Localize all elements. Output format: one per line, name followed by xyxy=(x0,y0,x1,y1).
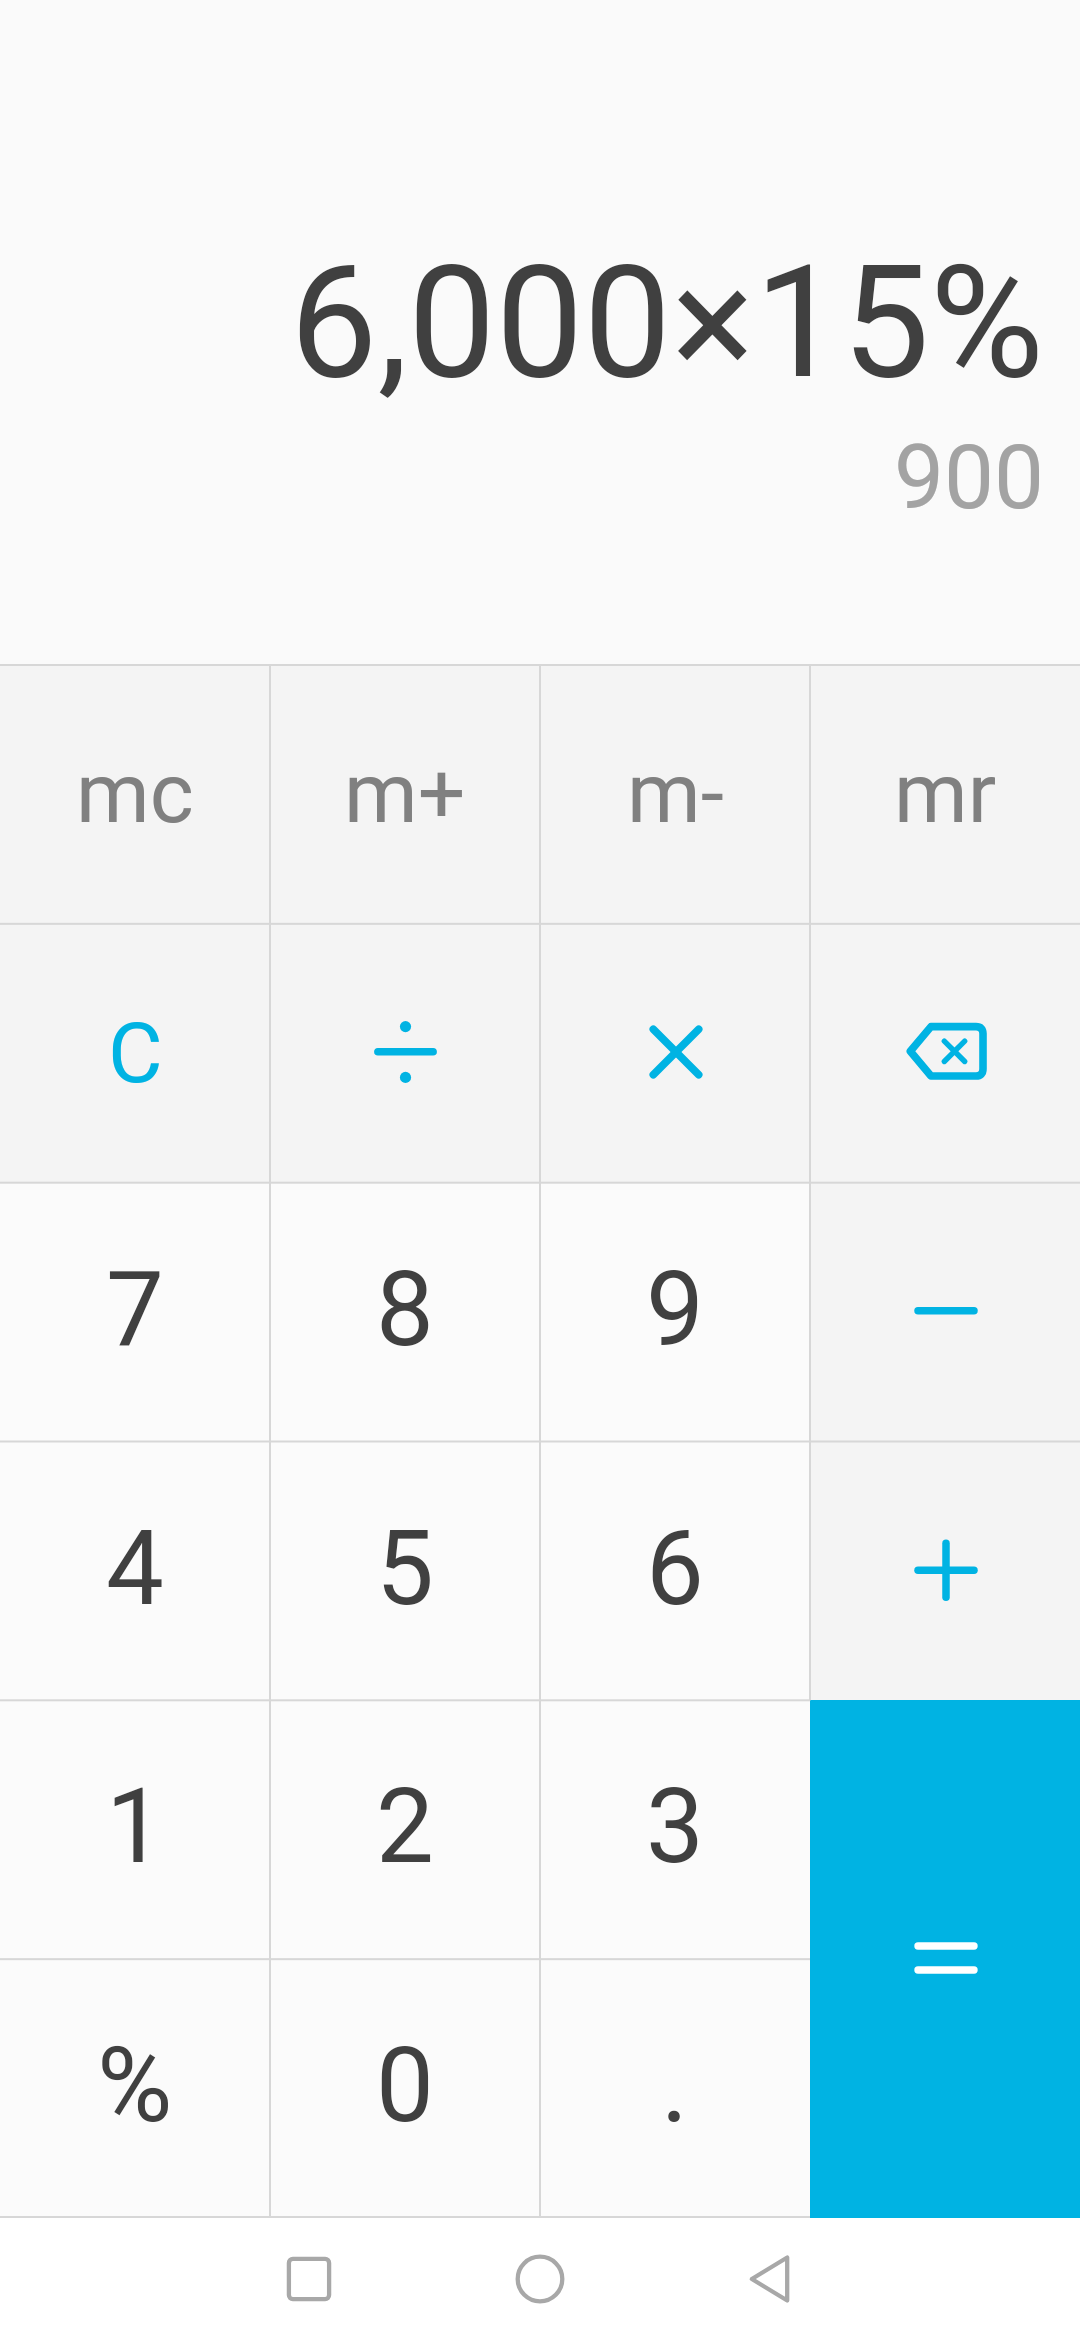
button[interactable]: 6 xyxy=(540,1442,810,1701)
staticText: 8 xyxy=(376,1249,434,1370)
staticText: 6,000×15% xyxy=(289,231,1044,414)
button[interactable]: . xyxy=(540,1959,810,2218)
button[interactable]: 7 xyxy=(0,1183,270,1442)
staticText: 1 xyxy=(106,1766,164,1887)
staticText: . xyxy=(661,2025,689,2146)
staticText: 9 xyxy=(646,1249,704,1370)
button[interactable]: 9 xyxy=(540,1183,810,1442)
staticText: 0 xyxy=(376,2025,434,2146)
button[interactable]: 2 xyxy=(270,1700,540,1959)
button[interactable]: % xyxy=(0,1959,270,2218)
staticText: mr xyxy=(894,744,997,842)
button[interactable]: Recent apps xyxy=(259,2229,359,2329)
staticText: 900 xyxy=(893,425,1044,529)
button[interactable]: Backspace xyxy=(810,924,1080,1183)
button[interactable]: Back xyxy=(719,2229,819,2329)
button[interactable]: Divide xyxy=(270,924,540,1183)
staticText: 5 xyxy=(376,1508,434,1629)
button[interactable]: mr xyxy=(810,665,1080,924)
button[interactable]: m+ xyxy=(270,665,540,924)
button[interactable]: 4 xyxy=(0,1442,270,1701)
staticText: m- xyxy=(627,744,724,842)
button[interactable]: Home xyxy=(490,2229,590,2329)
staticText: 6 xyxy=(646,1508,704,1629)
button[interactable]: 3 xyxy=(540,1700,810,1959)
button[interactable]: Minus xyxy=(810,1183,1080,1442)
staticText: 4 xyxy=(106,1508,164,1629)
button[interactable]: Multiply xyxy=(540,924,810,1183)
button[interactable]: 5 xyxy=(270,1442,540,1701)
staticText: 3 xyxy=(646,1766,704,1887)
button[interactable]: mc xyxy=(0,665,270,924)
button[interactable]: Plus xyxy=(810,1442,1080,1701)
button[interactable]: 1 xyxy=(0,1700,270,1959)
button[interactable]: Equals xyxy=(810,1700,1080,2218)
staticText: mc xyxy=(76,744,194,842)
button[interactable]: 0 xyxy=(270,1959,540,2218)
button[interactable]: 8 xyxy=(270,1183,540,1442)
staticText: m+ xyxy=(344,744,466,842)
button[interactable]: C xyxy=(0,924,270,1183)
button[interactable]: m- xyxy=(540,665,810,924)
staticText: C xyxy=(108,1004,163,1102)
staticText: % xyxy=(97,2025,173,2146)
staticText: 2 xyxy=(376,1766,434,1887)
staticText: 7 xyxy=(106,1249,164,1370)
